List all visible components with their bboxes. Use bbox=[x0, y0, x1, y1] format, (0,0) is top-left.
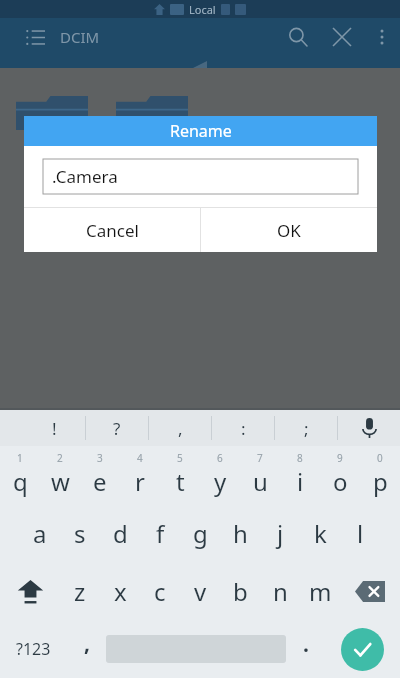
button[interactable]: Backspace bbox=[340, 562, 400, 620]
staticText: ? bbox=[113, 417, 121, 440]
staticText: ! bbox=[52, 417, 57, 440]
button[interactable]: ! bbox=[24, 410, 85, 446]
staticText: : bbox=[241, 417, 246, 440]
staticText: u bbox=[253, 465, 268, 498]
button[interactable]: Voice input bbox=[338, 410, 400, 446]
staticText: ; bbox=[304, 417, 309, 440]
staticText: .Camera bbox=[52, 165, 118, 188]
button[interactable]: OK bbox=[201, 208, 377, 252]
button[interactable]: l bbox=[340, 504, 380, 562]
button[interactable]: Search bbox=[276, 18, 320, 56]
button[interactable]: ? bbox=[86, 410, 148, 446]
staticText: r bbox=[135, 465, 145, 498]
button[interactable]: Shift bbox=[0, 562, 60, 620]
staticText: OK bbox=[277, 219, 301, 242]
button[interactable]: 6 bbox=[200, 446, 240, 504]
button[interactable]: j bbox=[260, 504, 300, 562]
staticText: 6 bbox=[217, 451, 223, 465]
staticText: y bbox=[214, 465, 227, 498]
staticText: h bbox=[233, 517, 248, 550]
button[interactable]: 8 bbox=[280, 446, 320, 504]
staticText: v bbox=[194, 575, 207, 608]
staticText: l bbox=[357, 517, 364, 550]
staticText: x bbox=[114, 575, 127, 608]
button[interactable]: Menu bbox=[20, 22, 50, 52]
staticText: . bbox=[303, 630, 309, 659]
button[interactable]: v bbox=[180, 562, 220, 620]
staticText: t bbox=[176, 465, 185, 498]
staticText: , bbox=[84, 629, 90, 658]
button[interactable]: f bbox=[140, 504, 180, 562]
button[interactable]: m bbox=[300, 562, 340, 620]
button[interactable]: .Camera bbox=[43, 159, 358, 194]
button[interactable]: 3 bbox=[80, 446, 120, 504]
staticText: Cancel bbox=[86, 219, 139, 242]
button[interactable]: 5 bbox=[160, 446, 200, 504]
staticText: 3 bbox=[97, 451, 103, 465]
button[interactable]: 7 bbox=[240, 446, 280, 504]
button[interactable]: 2 bbox=[40, 446, 80, 504]
staticText: f bbox=[156, 517, 165, 550]
staticText: , bbox=[178, 417, 183, 440]
button[interactable]: More options bbox=[364, 18, 400, 56]
button[interactable]: 4 bbox=[120, 446, 160, 504]
button[interactable]: h bbox=[220, 504, 260, 562]
button[interactable]: ?123 bbox=[0, 620, 67, 678]
staticText: w bbox=[51, 465, 70, 498]
staticText: DCIM bbox=[60, 27, 100, 47]
staticText: p bbox=[373, 465, 388, 498]
staticText: s bbox=[74, 517, 86, 550]
staticText: b bbox=[233, 575, 248, 608]
staticText: q bbox=[13, 465, 28, 498]
button[interactable]: ; bbox=[275, 410, 337, 446]
staticText: i bbox=[297, 465, 304, 498]
staticText: e bbox=[93, 465, 107, 498]
button[interactable]: g bbox=[180, 504, 220, 562]
button[interactable]: Close bbox=[320, 18, 364, 56]
staticText: 8 bbox=[297, 451, 303, 465]
button[interactable]: Cancel bbox=[24, 208, 200, 252]
button[interactable]: , bbox=[67, 620, 106, 678]
button[interactable]: x bbox=[100, 562, 140, 620]
staticText: n bbox=[273, 575, 288, 608]
button[interactable]: z bbox=[60, 562, 100, 620]
staticText: m bbox=[309, 575, 332, 608]
staticText: 9 bbox=[337, 451, 343, 465]
staticText: c bbox=[154, 575, 166, 608]
button[interactable]: k bbox=[300, 504, 340, 562]
staticText: d bbox=[113, 517, 128, 550]
button[interactable]: s bbox=[60, 504, 100, 562]
staticText: Local bbox=[189, 2, 216, 17]
staticText: 4 bbox=[137, 451, 143, 465]
staticText: ?123 bbox=[16, 638, 51, 660]
button[interactable]: c bbox=[140, 562, 180, 620]
staticText: z bbox=[74, 575, 86, 608]
button[interactable]: b bbox=[220, 562, 260, 620]
staticText: 7 bbox=[257, 451, 263, 465]
staticText: 0 bbox=[377, 451, 383, 465]
staticText: 1 bbox=[17, 451, 23, 465]
button[interactable]: , bbox=[149, 410, 211, 446]
staticText: j bbox=[277, 517, 284, 550]
staticText: Rename bbox=[170, 120, 232, 142]
staticText: k bbox=[314, 517, 327, 550]
button[interactable]: . bbox=[286, 620, 325, 678]
staticText: 5 bbox=[177, 451, 183, 465]
staticText: g bbox=[193, 517, 208, 550]
button[interactable]: a bbox=[20, 504, 60, 562]
button[interactable]: d bbox=[100, 504, 140, 562]
staticText: a bbox=[33, 517, 47, 550]
staticText: o bbox=[333, 465, 348, 498]
button[interactable]: 9 bbox=[320, 446, 360, 504]
button[interactable]: Enter bbox=[325, 620, 400, 678]
button[interactable]: 0 bbox=[360, 446, 400, 504]
button[interactable]: n bbox=[260, 562, 300, 620]
staticText: 2 bbox=[57, 451, 63, 465]
button[interactable]: : bbox=[212, 410, 274, 446]
button[interactable]: 1 bbox=[0, 446, 40, 504]
